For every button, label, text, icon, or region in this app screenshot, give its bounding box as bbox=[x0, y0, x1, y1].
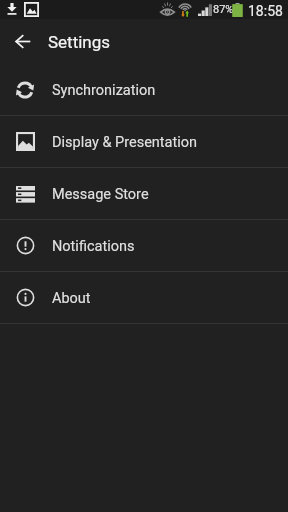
staticText: Notifications bbox=[52, 238, 135, 255]
staticText: About bbox=[52, 290, 91, 307]
button[interactable]: Message Store bbox=[0, 168, 288, 220]
staticText: Synchronization bbox=[52, 82, 156, 99]
staticText: 87% bbox=[213, 3, 234, 16]
button[interactable]: Navigate up bbox=[6, 25, 39, 58]
button[interactable]: Notifications bbox=[0, 220, 288, 272]
staticText: Display & Presentation bbox=[52, 134, 198, 151]
button[interactable]: About bbox=[0, 272, 288, 324]
staticText: Settings bbox=[48, 32, 111, 52]
button[interactable]: Display & Presentation bbox=[0, 116, 288, 168]
button[interactable]: Synchronization bbox=[0, 64, 288, 116]
staticText: 18:58 bbox=[248, 3, 283, 19]
staticText: Message Store bbox=[52, 186, 149, 203]
